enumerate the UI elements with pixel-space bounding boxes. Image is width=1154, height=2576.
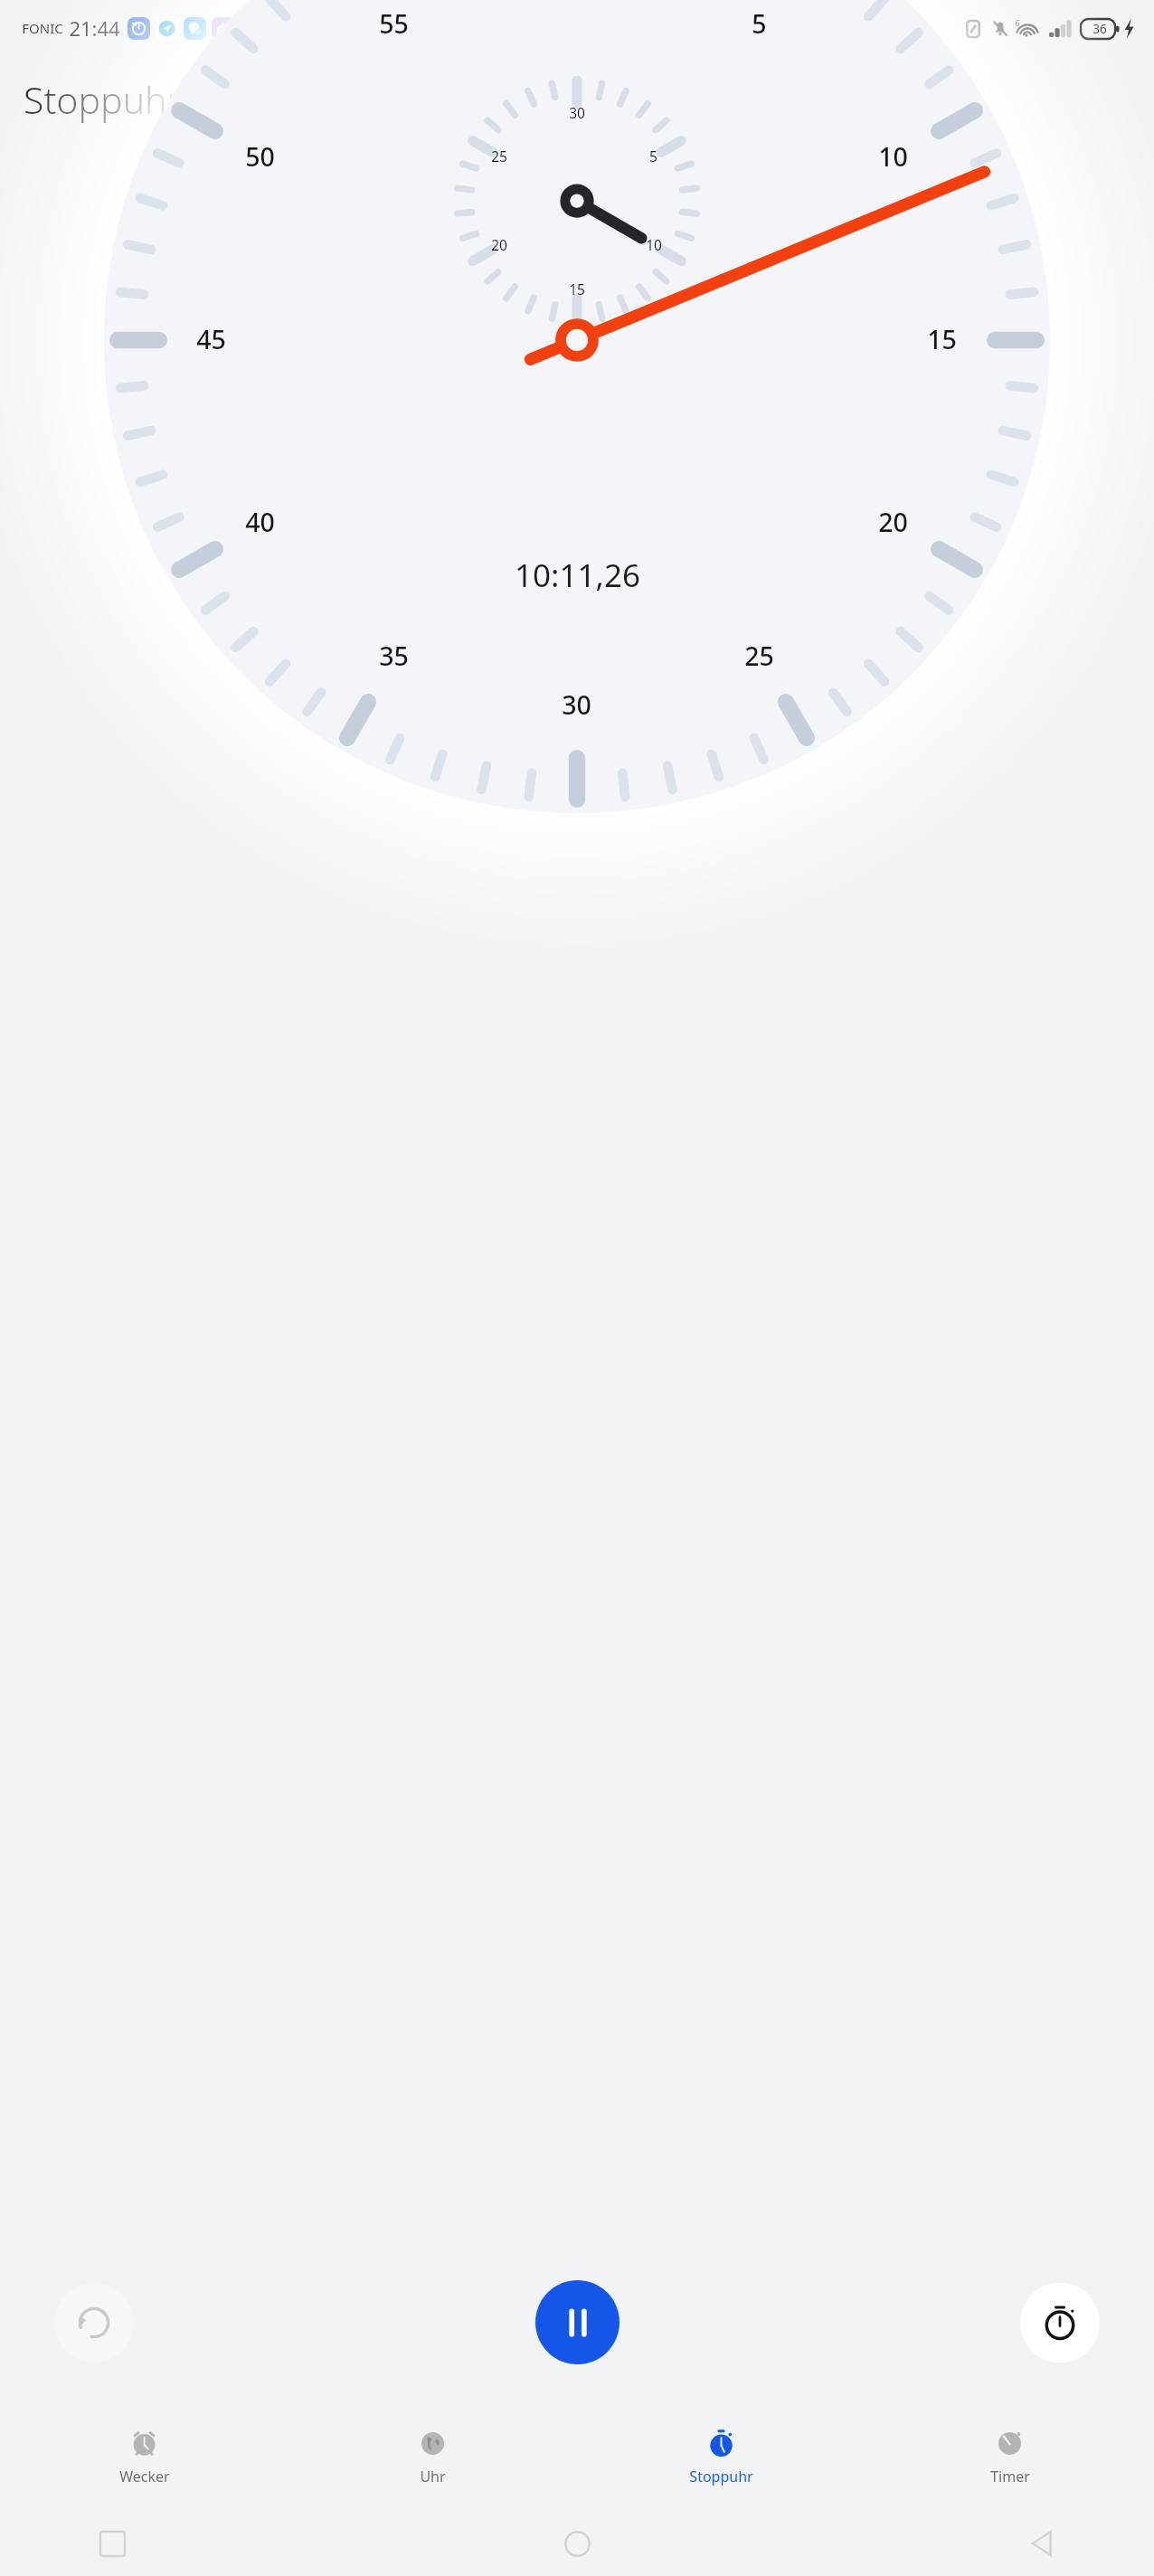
button[interactable]: Timer [865,2404,1154,2511]
staticText: 20 [491,235,507,254]
staticText: 5 [649,147,657,166]
staticText: 35 [379,639,409,674]
button[interactable]: Stoppuhr [577,2404,865,2511]
staticText: 30 [562,687,591,723]
button[interactable]: Pause [535,2280,620,2364]
button[interactable]: Uhr [288,2404,577,2511]
staticText: FONIC [22,19,63,37]
staticText: 5 [752,6,767,42]
staticText: 36 [1093,21,1107,37]
staticText: 15 [569,279,585,298]
staticText: 10:11,26 [515,554,640,597]
staticText: 55 [379,6,409,42]
staticText: 20 [878,505,908,540]
staticText: 40 [245,505,275,540]
staticText: 15 [927,322,957,357]
staticText: 45 [196,322,226,357]
staticText: 6 [1015,17,1020,28]
button[interactable]: Zurück [1017,2518,1067,2569]
staticText: 30 [569,103,585,122]
staticText: 10 [878,139,908,175]
button[interactable]: Letzte Apps [87,2518,137,2569]
button[interactable]: Runde [1020,2283,1100,2363]
staticText: Uhr [420,2467,446,2486]
button[interactable]: Zurücksetzen [54,2283,134,2363]
staticText: 25 [491,147,507,166]
staticText: 21:44 [69,14,120,42]
staticText: 50 [245,139,275,175]
staticText: Timer [990,2467,1030,2486]
staticText: 25 [744,639,774,674]
staticText: Stoppuhr [689,2467,753,2486]
staticText: Stoppuhr [24,74,182,125]
staticText: Wecker [119,2467,170,2486]
button[interactable]: Wecker [0,2404,288,2511]
button[interactable]: Startseite [552,2518,602,2569]
staticText: 10 [646,235,662,254]
